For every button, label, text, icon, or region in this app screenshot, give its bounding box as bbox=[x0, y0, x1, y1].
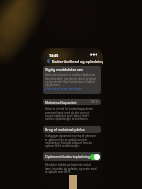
staticText: Batterihelbred og opladning bbox=[52, 59, 103, 64]
button[interactable]: Back bbox=[45, 58, 51, 64]
staticText: 96 % bbox=[91, 100, 99, 104]
button[interactable]: Find ud af mere om dette bbox=[45, 87, 82, 91]
button[interactable]: Optimeret batteriopladning bbox=[90, 154, 100, 160]
staticText: Indbygget dynamisk styring af ydeevne er… bbox=[45, 134, 98, 147]
button[interactable]: Maksimal kapacitet bbox=[43, 99, 101, 105]
button[interactable]: Vigtig meddelelse om batteriet bbox=[43, 66, 101, 94]
button[interactable]: Optimeret batteriopladning bbox=[43, 152, 101, 161]
staticText: Mindsker sliddet på batteriet ved at lær… bbox=[45, 163, 98, 173]
staticText: Batteriets tilstand er usikker. Apple ka… bbox=[45, 73, 99, 86]
staticText: Vigtig meddelelse om batteriet bbox=[45, 67, 99, 72]
staticText: 14:45 bbox=[49, 53, 59, 58]
staticText: Dette er et mål for batterikapaciteten s… bbox=[45, 107, 98, 120]
staticText: Optimeret batteriopladning bbox=[45, 154, 90, 159]
staticText: Brug af maksimal ydelse bbox=[45, 127, 85, 132]
button[interactable]: Brug af maksimal ydelse bbox=[43, 126, 101, 133]
staticText: Maksimal kapacitet bbox=[45, 100, 77, 105]
